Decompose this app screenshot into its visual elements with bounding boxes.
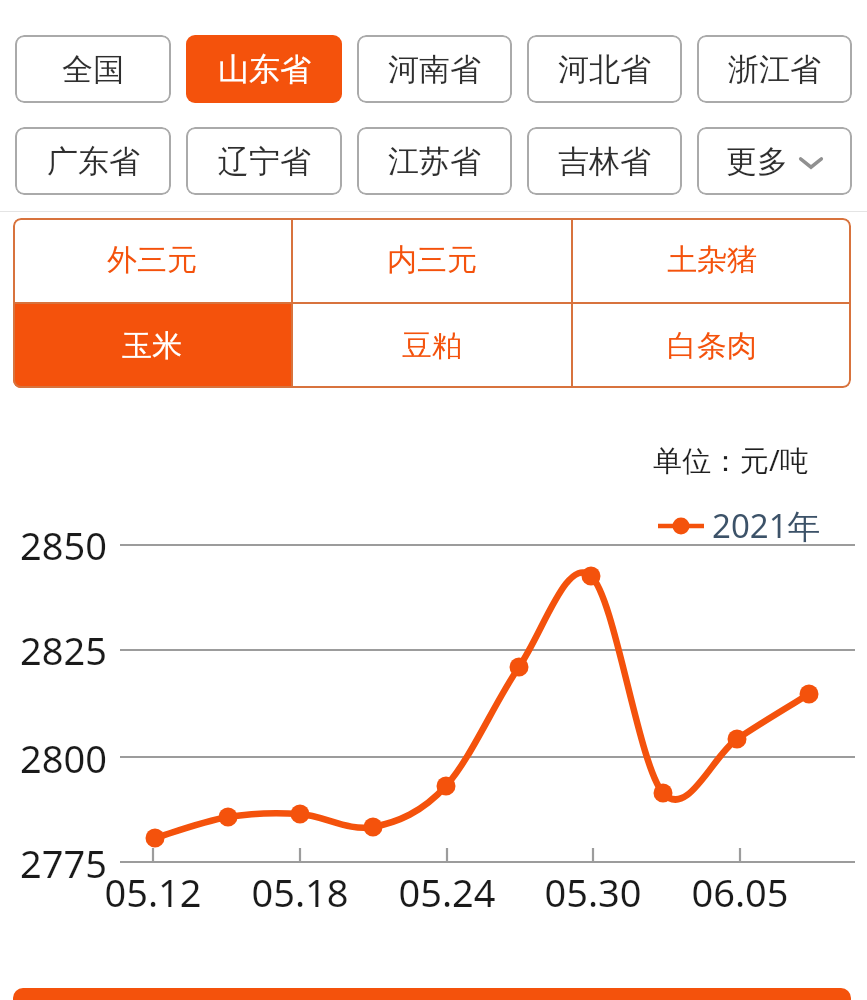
staticText: 山东省 [218,50,311,89]
button[interactable]: 吉林省 [527,127,682,195]
button[interactable]: 2021年 [658,503,821,548]
staticText: 广东省 [47,142,140,181]
staticText: 白条肉 [667,327,757,365]
button[interactable]: 河南省 [357,35,512,103]
staticText: 更多 [726,142,788,181]
staticText: 外三元 [107,241,197,279]
staticText: 05.30 [533,866,653,918]
button[interactable]: 浙江省 [697,35,852,103]
button[interactable]: 外三元 [13,218,291,302]
button[interactable]: 辽宁省 [186,127,342,195]
other: More provinces [798,149,824,175]
staticText: 河南省 [388,50,481,89]
staticText: 2021年 [712,503,821,548]
staticText: 05.24 [387,866,507,918]
button[interactable] [13,988,851,1000]
button[interactable]: 更多 [697,127,852,195]
button[interactable]: 全国 [15,35,171,103]
staticText: 2850 [20,519,107,571]
staticText: 吉林省 [558,142,651,181]
staticText: 豆粕 [402,327,462,365]
button[interactable]: 玉米 [13,304,291,388]
staticText: 全国 [62,50,124,89]
button[interactable]: 豆粕 [293,304,571,388]
button[interactable]: 江苏省 [357,127,512,195]
button[interactable]: 白条肉 [573,304,851,388]
staticText: 单位：元/吨 [653,440,809,480]
button[interactable]: 河北省 [527,35,682,103]
button[interactable]: 土杂猪 [573,218,851,302]
staticText: 06.05 [680,866,800,918]
button[interactable]: 山东省 [186,35,342,103]
staticText: 河北省 [558,50,651,89]
staticText: 江苏省 [388,142,481,181]
staticText: 辽宁省 [218,142,311,181]
button[interactable]: 广东省 [15,127,171,195]
staticText: 2775 [20,837,107,889]
staticText: 土杂猪 [667,241,757,279]
staticText: 浙江省 [728,50,821,89]
staticText: 内三元 [387,241,477,279]
staticText: 2825 [20,624,107,676]
staticText: 05.12 [93,866,213,918]
staticText: 玉米 [122,327,182,365]
button[interactable]: 内三元 [293,218,571,302]
staticText: 2800 [20,732,107,784]
staticText: 05.18 [240,866,360,918]
